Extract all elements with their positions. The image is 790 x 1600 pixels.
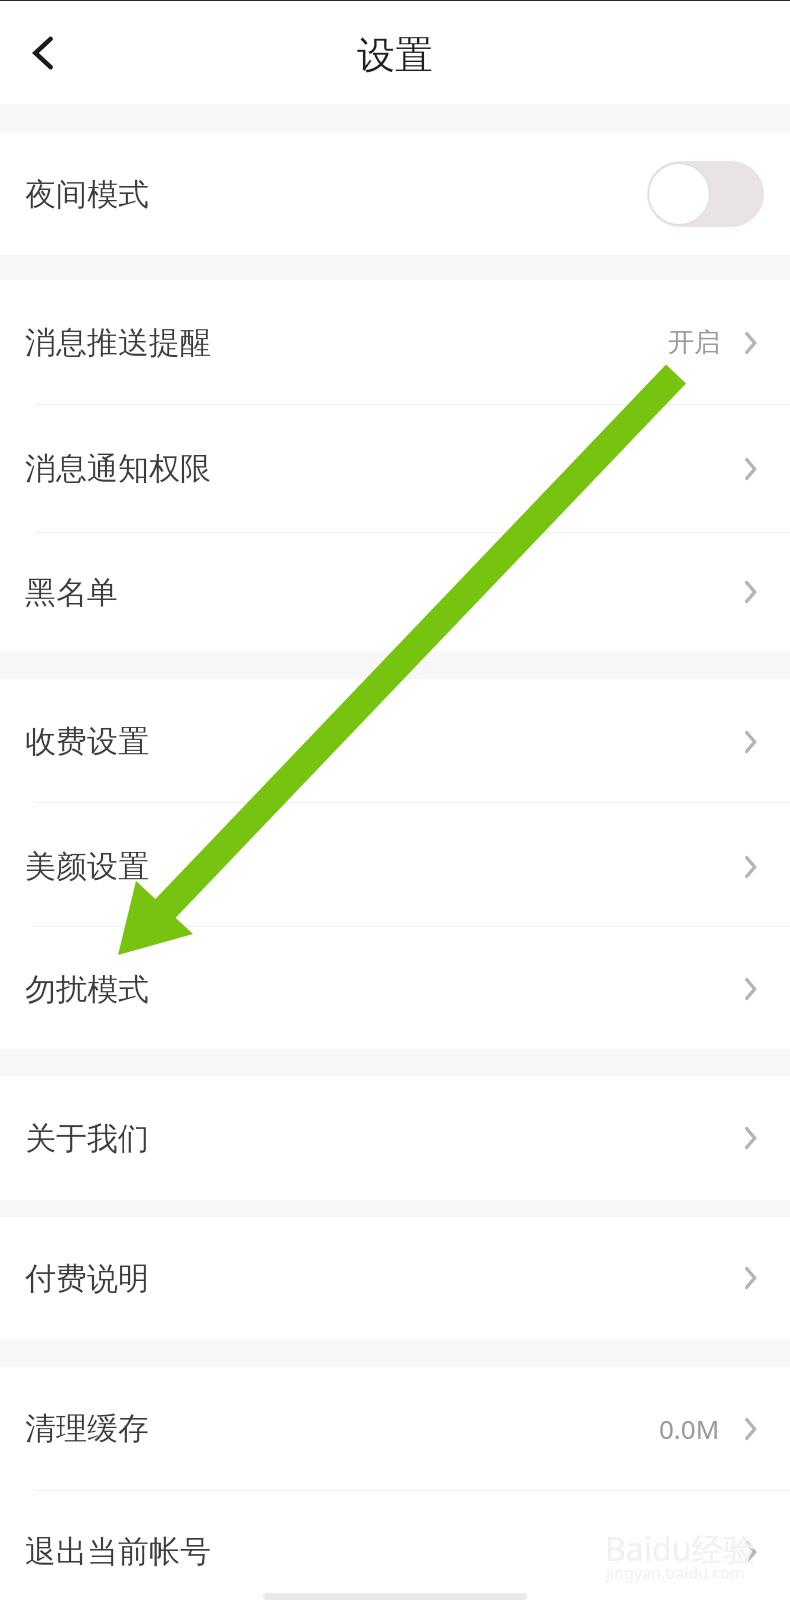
button[interactable]: 付费说明 <box>0 1217 790 1339</box>
button[interactable]: 夜间模式 <box>0 133 790 255</box>
staticText: Baidu经验 <box>605 1527 756 1571</box>
staticText: 退出当前帐号 <box>25 1532 211 1571</box>
staticText: 0.0M <box>659 1411 720 1446</box>
staticText: 消息推送提醒 <box>25 323 211 362</box>
staticText: 消息通知权限 <box>25 449 211 488</box>
staticText: jingyan.baidu.com <box>606 1562 745 1584</box>
button[interactable]: Back <box>14 24 72 82</box>
staticText: 美颜设置 <box>25 847 149 886</box>
button[interactable]: 黑名单 <box>0 533 790 651</box>
staticText: 关于我们 <box>25 1119 149 1158</box>
staticText: 开启 <box>668 326 720 359</box>
button[interactable]: 清理缓存 <box>0 1367 790 1490</box>
button[interactable]: 退出当前帐号 <box>0 1491 790 1600</box>
staticText: 收费设置 <box>25 722 149 761</box>
button[interactable]: 消息通知权限 <box>0 405 790 532</box>
staticText: 勿扰模式 <box>25 970 149 1009</box>
button[interactable]: Night mode toggle <box>647 161 764 227</box>
button[interactable]: 消息推送提醒 <box>0 280 790 404</box>
button[interactable]: 美颜设置 <box>0 803 790 926</box>
staticText: 清理缓存 <box>25 1409 149 1448</box>
staticText: 夜间模式 <box>25 175 149 214</box>
staticText: 设置 <box>357 31 433 79</box>
button[interactable]: 关于我们 <box>0 1076 790 1200</box>
staticText: 付费说明 <box>25 1259 149 1298</box>
button[interactable]: 勿扰模式 <box>0 927 790 1049</box>
button[interactable]: 收费设置 <box>0 679 790 802</box>
staticText: 黑名单 <box>25 573 118 612</box>
